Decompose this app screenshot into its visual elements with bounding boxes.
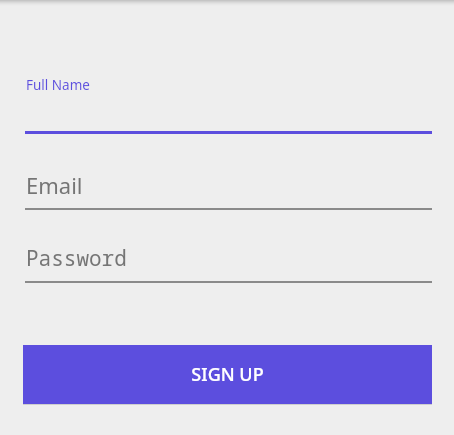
staticText: Email	[26, 170, 83, 200]
button[interactable]: Email	[25, 160, 432, 210]
button[interactable]: Password	[25, 233, 432, 283]
button[interactable]: Full Name	[25, 62, 432, 138]
staticText: Full Name	[26, 76, 90, 94]
staticText: SIGN UP	[191, 362, 264, 387]
staticText: Password	[26, 244, 127, 273]
button[interactable]: SIGN UP	[23, 345, 432, 404]
